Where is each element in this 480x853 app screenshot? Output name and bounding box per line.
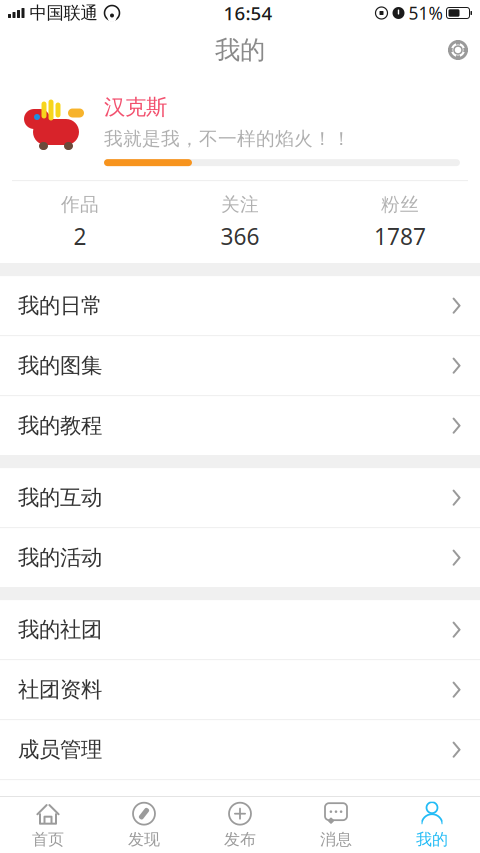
button[interactable]: 成员审核 xyxy=(0,780,480,840)
staticText: 消息 xyxy=(320,830,352,849)
staticText: 51% xyxy=(408,1,442,24)
staticText: 我的日常 xyxy=(18,293,102,319)
staticText: 中国联通 xyxy=(29,2,97,24)
staticText: 1787 xyxy=(374,221,426,251)
button[interactable]: 粉丝 xyxy=(320,193,480,251)
staticText: 我就是我，不一样的焰火！！ xyxy=(104,127,351,150)
staticText: 我的图集 xyxy=(18,353,102,379)
staticText: 我的互动 xyxy=(18,485,102,511)
staticText: 16:54 xyxy=(223,1,272,25)
staticText: 发布 xyxy=(224,830,256,849)
button[interactable]: 我的活动 xyxy=(0,528,480,587)
button[interactable]: 设置 xyxy=(436,28,480,72)
staticText: 发现 xyxy=(128,830,160,849)
staticText: 366 xyxy=(220,221,259,251)
button[interactable]: 我的教程 xyxy=(0,396,480,455)
button[interactable]: 我的 xyxy=(384,803,480,847)
staticText: 2 xyxy=(73,221,86,251)
staticText: 首页 xyxy=(32,830,64,849)
button[interactable]: 我的图集 xyxy=(0,336,480,396)
button[interactable]: 发现 xyxy=(96,803,192,847)
staticText: 我的 xyxy=(215,34,265,65)
button[interactable]: 成员管理 xyxy=(0,720,480,780)
staticText: 成员管理 xyxy=(18,737,102,763)
button[interactable]: 消息 xyxy=(288,803,384,847)
button[interactable]: 我的互动 xyxy=(0,468,480,528)
button[interactable]: 我的日常 xyxy=(0,276,480,336)
staticText: 粉丝 xyxy=(381,193,419,216)
staticText: 作品 xyxy=(61,193,99,216)
button[interactable]: 发布 xyxy=(192,803,288,847)
staticText: 关注 xyxy=(221,193,259,216)
button[interactable]: 头像 xyxy=(18,90,90,162)
staticText: 我的社团 xyxy=(18,617,102,643)
staticText: 成员审核 xyxy=(18,797,102,823)
button[interactable]: 社团资料 xyxy=(0,660,480,720)
button[interactable]: 首页 xyxy=(0,803,96,847)
staticText: 社团资料 xyxy=(18,677,102,703)
button[interactable]: 关注 xyxy=(160,193,320,251)
button[interactable]: 我的社团 xyxy=(0,600,480,660)
staticText: 汉克斯 xyxy=(104,94,167,120)
staticText: 我的活动 xyxy=(18,545,102,571)
button[interactable]: 作品 xyxy=(0,193,160,251)
staticText: 我的教程 xyxy=(18,413,102,439)
staticText: 我的 xyxy=(416,830,448,849)
